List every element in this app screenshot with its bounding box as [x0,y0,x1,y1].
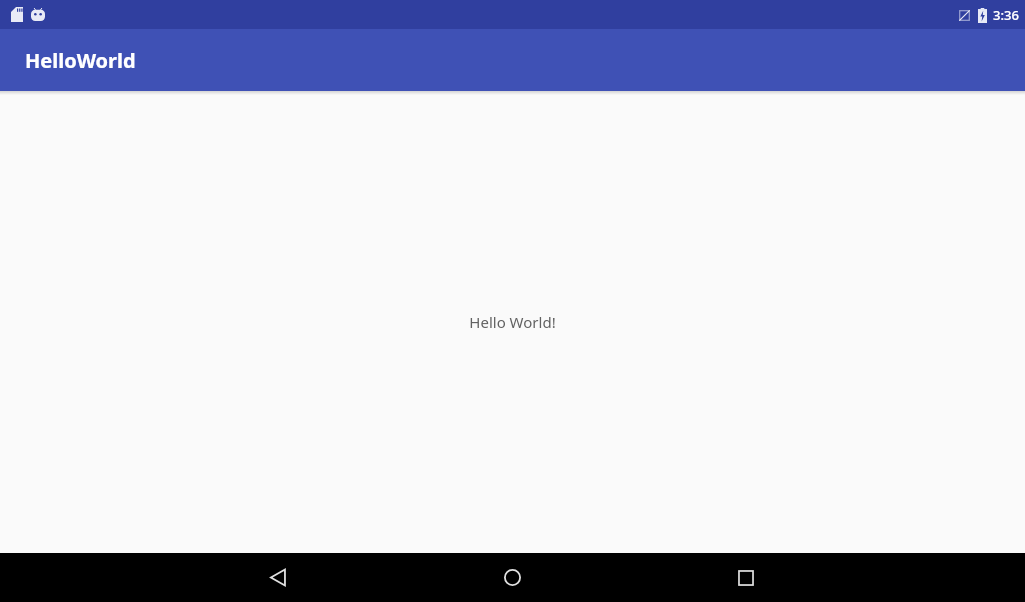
button[interactable]: Recent apps [717,553,775,602]
staticText: 3:36 [993,6,1019,24]
button[interactable]: Home [483,553,541,602]
staticText: HelloWorld [25,47,136,74]
staticText: Hello World! [469,312,556,332]
button[interactable]: Back [249,553,307,602]
